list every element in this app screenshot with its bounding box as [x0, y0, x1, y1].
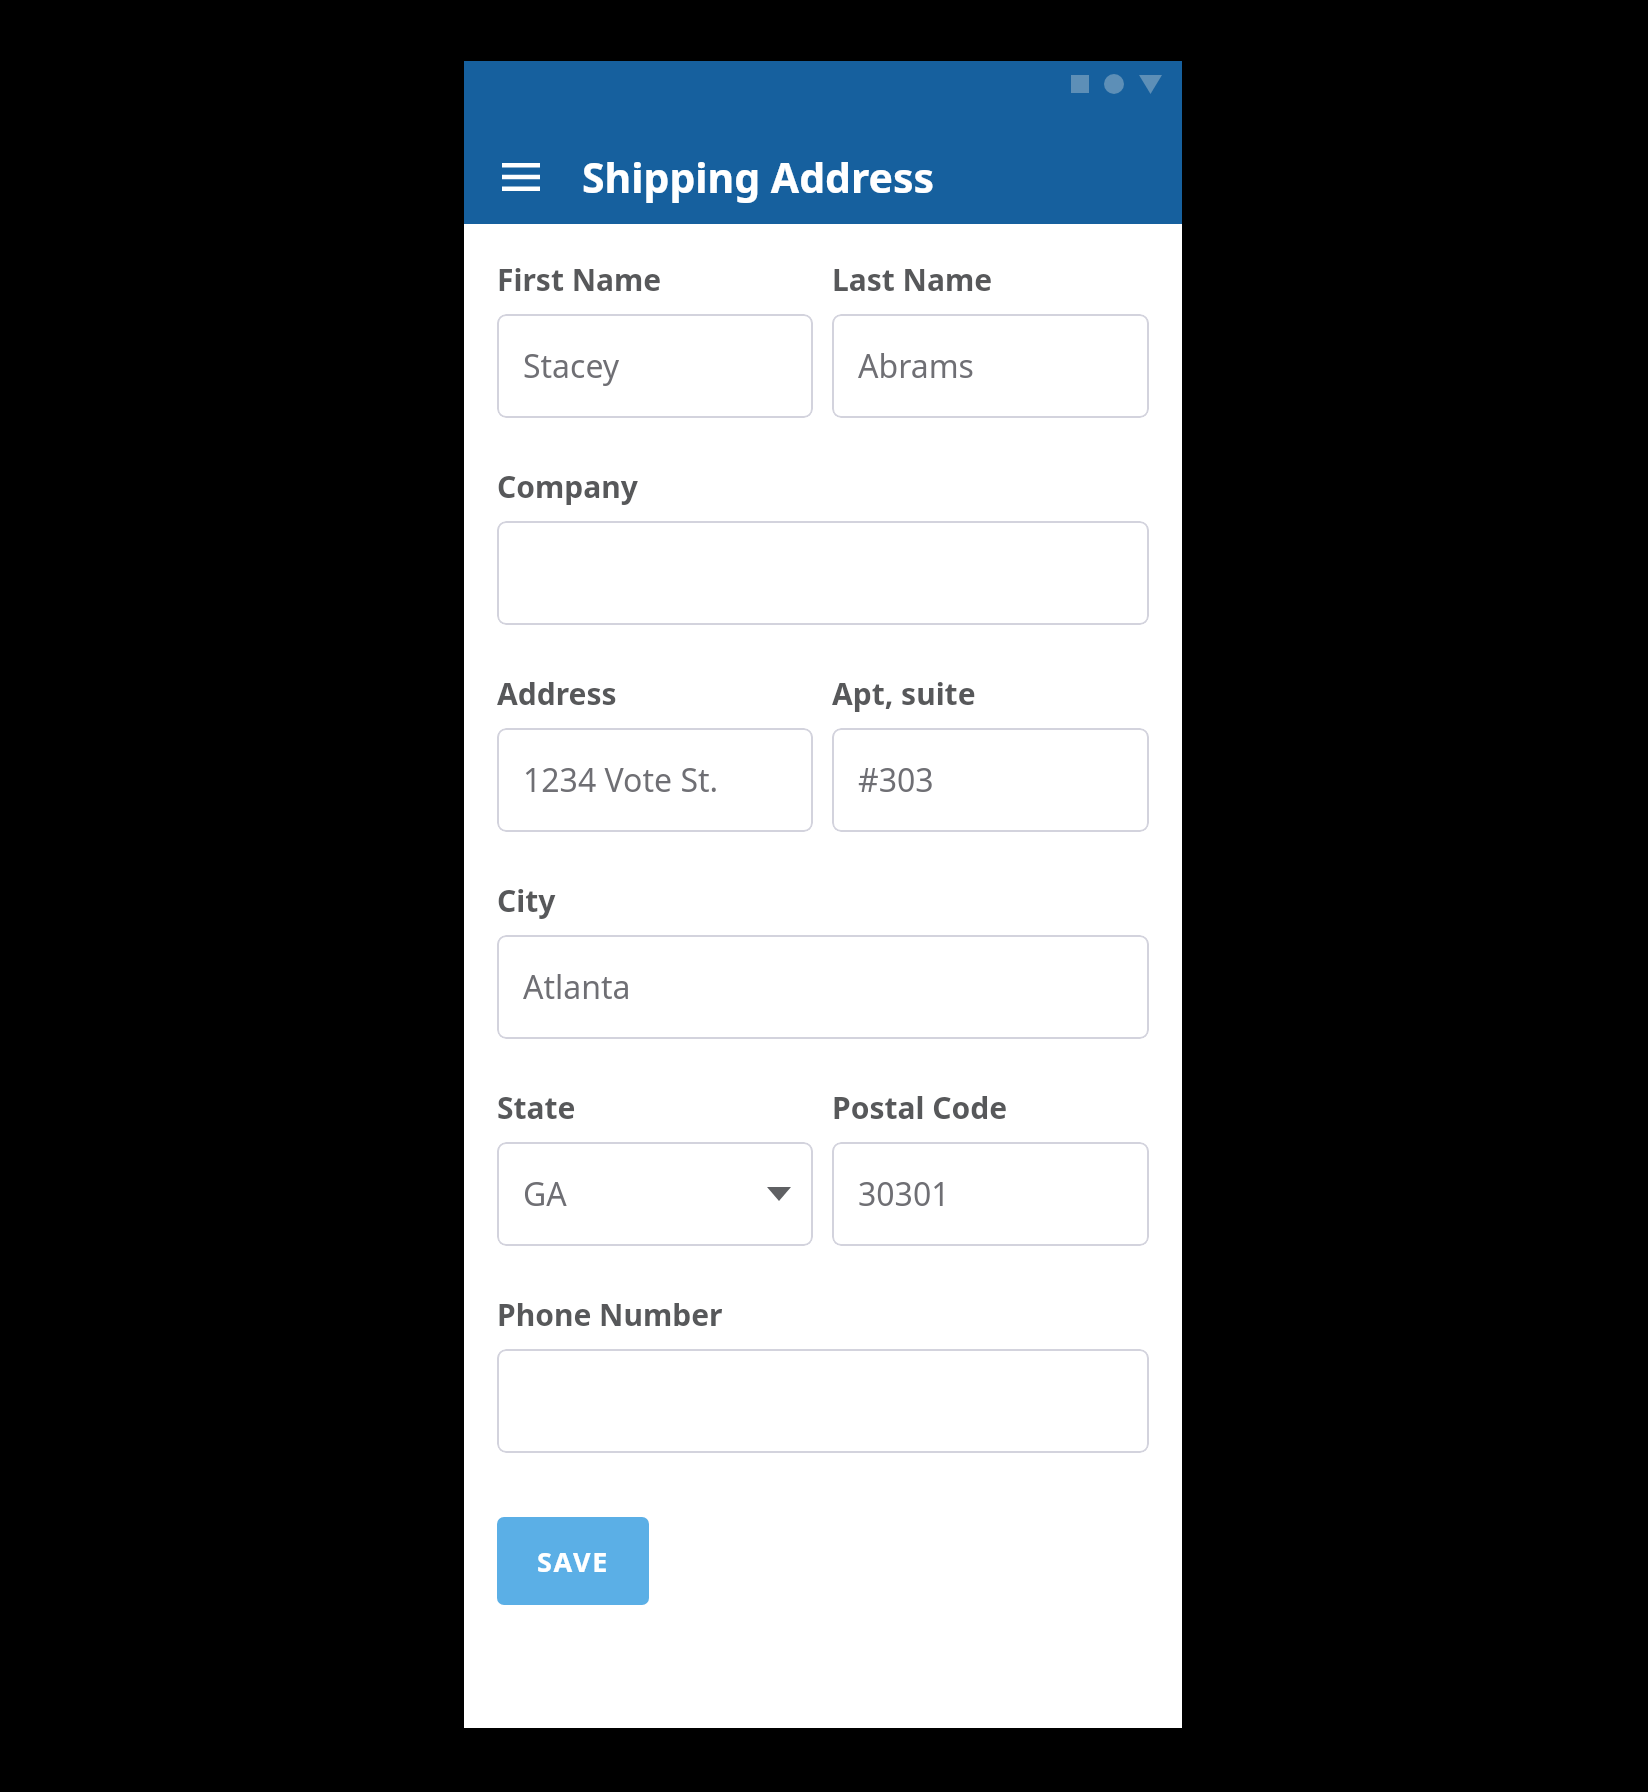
staticText: Shipping Address — [582, 149, 935, 205]
staticText: SAVE — [537, 1543, 609, 1580]
staticText: Address — [497, 673, 617, 714]
button[interactable]: Open navigation menu — [490, 146, 552, 208]
staticText: Postal Code — [832, 1087, 1008, 1128]
staticText: State — [497, 1087, 576, 1128]
button[interactable]: Abrams — [832, 314, 1149, 418]
button[interactable] — [497, 1349, 1149, 1453]
button[interactable]: Atlanta — [497, 935, 1149, 1039]
button[interactable] — [497, 521, 1149, 625]
staticText: Last Name — [832, 259, 993, 300]
staticText: Abrams — [858, 344, 974, 388]
staticText: City — [497, 880, 556, 921]
staticText: 30301 — [858, 1172, 950, 1216]
button[interactable]: 1234 Vote St. — [497, 728, 813, 832]
button[interactable]: Stacey — [497, 314, 813, 418]
staticText: Phone Number — [497, 1294, 723, 1335]
staticText: First Name — [497, 259, 662, 300]
staticText: 1234 Vote St. — [523, 758, 719, 802]
button[interactable]: SAVE — [497, 1517, 649, 1605]
button[interactable]: #303 — [832, 728, 1149, 832]
staticText: Stacey — [523, 344, 620, 388]
staticText: Atlanta — [523, 965, 631, 1009]
button[interactable]: 30301 — [832, 1142, 1149, 1246]
staticText: Company — [497, 466, 638, 507]
button[interactable]: GA — [497, 1142, 813, 1246]
staticText: Apt, suite — [832, 673, 976, 714]
staticText: #303 — [858, 758, 934, 802]
staticText: GA — [523, 1172, 567, 1216]
